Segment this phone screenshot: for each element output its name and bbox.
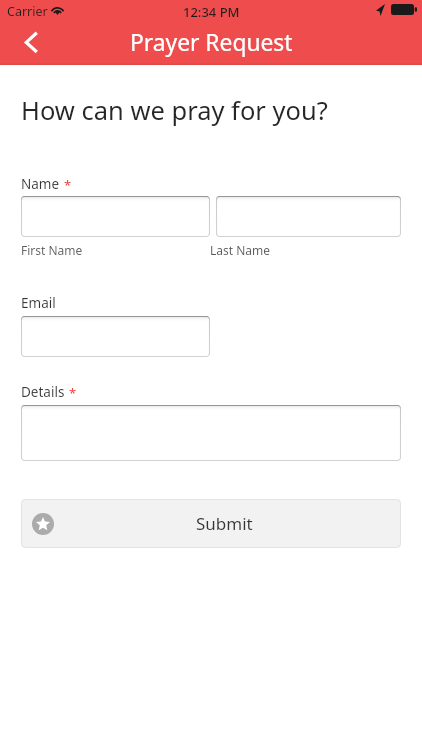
button[interactable] <box>216 196 401 237</box>
staticText: How can we pray for you? <box>21 93 328 128</box>
staticText: Prayer Request <box>130 27 293 58</box>
staticText: Carrier <box>7 3 48 20</box>
button[interactable]: Back <box>10 25 46 61</box>
button[interactable] <box>21 316 210 357</box>
button[interactable] <box>21 405 401 461</box>
staticText: Details <box>21 383 65 401</box>
staticText: * <box>69 384 77 402</box>
staticText: Name <box>21 175 60 193</box>
button[interactable] <box>21 196 210 237</box>
staticText: Last Name <box>210 242 271 258</box>
staticText: Email <box>21 294 56 312</box>
staticText: First Name <box>21 242 83 258</box>
staticText: Submit <box>196 512 253 535</box>
staticText: 12:34 PM <box>183 3 240 21</box>
staticText: * <box>64 176 72 194</box>
button[interactable]: Submit <box>21 499 401 548</box>
